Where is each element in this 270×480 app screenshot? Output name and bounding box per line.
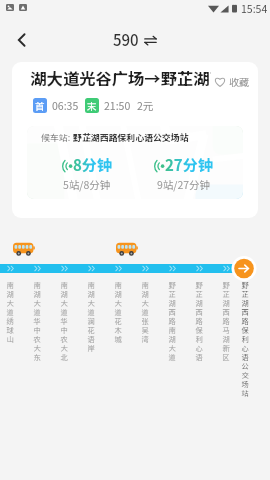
staticText: 南 湖 大 道 华 中 农 大 东 — [33, 281, 41, 362]
staticText: 首 — [35, 99, 45, 113]
button[interactable]: 590 — [113, 29, 157, 51]
staticText: 野 芷 湖 西 路 保 利 心 语 — [195, 281, 203, 362]
staticText: 南 湖 大 道 张 吴 湾 — [141, 281, 149, 344]
button[interactable]: 8分钟 — [35, 154, 139, 192]
button[interactable]: 南 湖 大 道 澜 花 语 岸 — [77, 281, 104, 353]
button[interactable]: Back — [4, 22, 40, 58]
staticText: 8分钟 — [73, 154, 112, 176]
staticText: 野芷湖西路保利心语公交场站 — [73, 131, 189, 144]
button[interactable]: 野 芷 湖 西 路 保 利 心 语 — [185, 281, 212, 362]
staticText: 南 湖 大 道 绣 球 山 — [6, 281, 14, 344]
staticText: 野 芷 湖 西 路 保 利 心 语 公 交 场 站 — [241, 281, 249, 398]
staticText: 06:35 — [52, 98, 79, 113]
staticText: 15:54 — [241, 1, 268, 16]
staticText: 野 芷 湖 西 路 马 湖 新 区 — [222, 281, 230, 362]
staticText: 21:50 — [104, 98, 131, 113]
staticText: 南 湖 大 道 华 中 农 大 北 — [60, 281, 68, 362]
button[interactable]: 南湖大道光谷广场→野芷湖西路保利 — [12, 62, 258, 218]
staticText: 南 湖 大 道 澜 花 语 岸 — [87, 281, 95, 353]
button[interactable]: 27分钟 — [131, 154, 235, 192]
button[interactable]: 野 芷 湖 西 路 马 湖 新 区 — [212, 281, 239, 362]
staticText: 收藏 — [229, 74, 249, 88]
button[interactable]: 南 湖 大 道 华 中 农 大 北 — [50, 281, 77, 362]
staticText: 9站/27分钟 — [157, 177, 211, 192]
staticText: 末 — [87, 99, 97, 113]
staticText: 2元 — [137, 98, 154, 113]
button[interactable]: 野 芷 湖 西 路 保 利 心 语 公 交 场 站 — [231, 281, 258, 398]
staticText: 27分钟 — [165, 154, 213, 176]
button[interactable]: 南 湖 大 道 张 吴 湾 — [131, 281, 158, 344]
staticText: 野 芷 湖 西 路 南 湖 大 道 — [168, 281, 176, 362]
button[interactable]: 南 湖 大 道 花 木 城 — [104, 281, 131, 344]
staticText: 南湖大道光谷广场→野芷湖西路保利 — [30, 66, 211, 87]
staticText: 5站/8分钟 — [63, 177, 111, 192]
staticText: 南 湖 大 道 花 木 城 — [114, 281, 122, 344]
button[interactable]: 南 湖 大 道 绣 球 山 — [0, 281, 23, 344]
staticText: 590 — [113, 29, 139, 51]
staticText: 候车站: — [41, 131, 73, 144]
button[interactable]: 野 芷 湖 西 路 南 湖 大 道 — [158, 281, 185, 362]
button[interactable]: 收藏 — [214, 74, 249, 88]
button[interactable]: 南 湖 大 道 华 中 农 大 东 — [23, 281, 50, 362]
